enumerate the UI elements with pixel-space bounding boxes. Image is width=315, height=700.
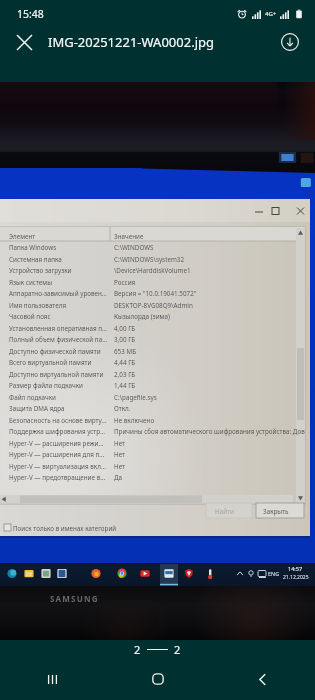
staticText: 2 bbox=[174, 642, 181, 657]
button[interactable]: Close bbox=[5, 28, 43, 56]
staticText: Поддержка шифрования устр… bbox=[9, 427, 106, 436]
staticText: Значение bbox=[114, 232, 144, 241]
staticText: Безопасность на основе вирту… bbox=[9, 416, 107, 425]
button[interactable]: Download bbox=[273, 28, 307, 56]
staticText: Поиск только в именах категорий bbox=[13, 524, 117, 533]
staticText: Откл. bbox=[114, 404, 131, 413]
staticText: Hyper-V — виртуализация вкл… bbox=[9, 462, 106, 471]
staticText: Папка Windows bbox=[9, 243, 57, 252]
staticText: Файл подкачки bbox=[9, 393, 56, 402]
staticText: Имя пользователя bbox=[9, 301, 67, 310]
staticText: Россия bbox=[114, 278, 136, 287]
staticText: C:\WINDOWS bbox=[114, 243, 154, 252]
button[interactable]: Home bbox=[105, 658, 210, 700]
staticText: Hyper-V — расширения режи… bbox=[9, 439, 104, 448]
staticText: 21.12.2025 bbox=[283, 574, 309, 581]
staticText: Защита DMA ядра bbox=[9, 404, 65, 413]
button[interactable]: Back bbox=[210, 658, 315, 700]
staticText: Найти bbox=[215, 507, 234, 516]
staticText: Версия = "10.0.19041.5072" bbox=[114, 289, 197, 298]
staticText: 1,44 ГБ bbox=[114, 381, 136, 390]
button[interactable]: Recent apps bbox=[0, 658, 105, 700]
staticText: Установленная оперативная п… bbox=[9, 324, 107, 333]
staticText: Нет bbox=[114, 450, 126, 459]
staticText: C:\WINDOWS\system32 bbox=[114, 255, 185, 264]
staticText: Нет bbox=[114, 439, 126, 448]
staticText: Причины сбоя автоматического шифрования … bbox=[114, 427, 305, 436]
staticText: Аппаратно-зависимый уровен… bbox=[9, 289, 107, 298]
staticText: Hyper-V — расширения для п… bbox=[9, 450, 105, 459]
staticText: Доступно физической памяти bbox=[9, 347, 101, 356]
staticText: Доступно виртуальной памяти bbox=[9, 370, 104, 379]
staticText: 14:57 bbox=[288, 565, 303, 572]
staticText: 4,44 ГБ bbox=[114, 358, 136, 367]
staticText: Закрыть bbox=[263, 507, 289, 516]
staticText: Hyper-V — предотвращение в… bbox=[9, 473, 106, 482]
staticText: Да bbox=[114, 473, 123, 482]
staticText: Системная папка bbox=[9, 255, 62, 264]
staticText: Язык системы bbox=[9, 278, 52, 287]
staticText: SAMSUNG bbox=[50, 593, 99, 604]
staticText: 3,00 ГБ bbox=[114, 335, 136, 344]
staticText: Размер файла подкачки bbox=[9, 381, 83, 390]
staticText: 2 bbox=[134, 642, 141, 657]
staticText: 4,00 ГБ bbox=[114, 324, 136, 333]
staticText: Всего виртуальной памяти bbox=[9, 358, 92, 367]
staticText: Кызылорда (зима) bbox=[114, 312, 170, 321]
staticText: 2,03 ГБ bbox=[114, 370, 136, 379]
staticText: DESKTOP-8VG08Q9\Admin bbox=[114, 301, 193, 310]
staticText: 15:48 bbox=[17, 7, 44, 21]
staticText: Нет bbox=[114, 462, 126, 471]
staticText: Полный объем физической па… bbox=[9, 335, 108, 344]
staticText: C:\pagefile.sys bbox=[114, 393, 157, 402]
staticText: Часовой пояс bbox=[9, 312, 51, 321]
staticText: Не включено bbox=[114, 416, 155, 425]
staticText: 653 МБ bbox=[114, 347, 137, 356]
staticText: Устройство загрузки bbox=[9, 266, 72, 275]
staticText: Элемент bbox=[9, 232, 36, 241]
staticText: IMG-20251221-WA0002.jpg bbox=[48, 33, 273, 51]
staticText: ENG bbox=[268, 570, 280, 577]
staticText: \Device\HarddiskVolume1 bbox=[114, 266, 191, 275]
staticText: 4G+ bbox=[265, 10, 277, 18]
